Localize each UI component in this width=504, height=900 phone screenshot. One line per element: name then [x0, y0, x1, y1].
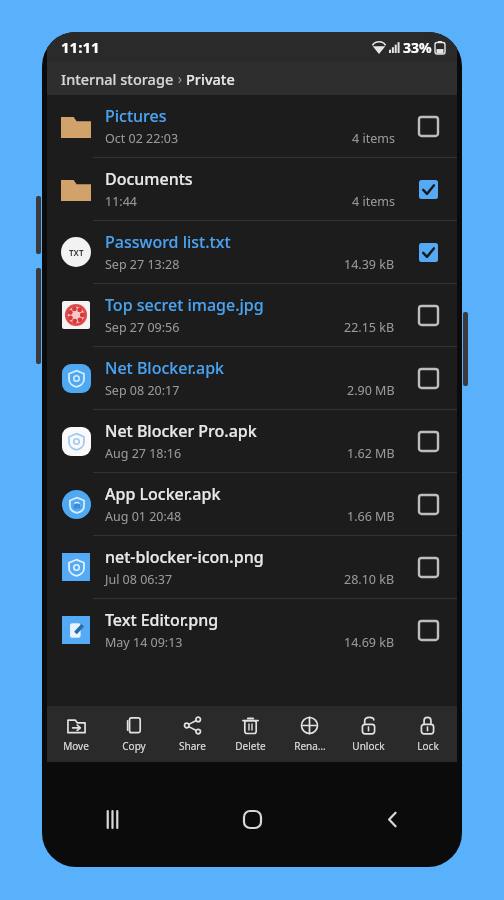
button[interactable]: Selected [411, 172, 445, 206]
staticText: TXT [69, 247, 84, 258]
button[interactable]: Top secret image.jpg [47, 284, 457, 346]
staticText: Net Blocker Pro.apk [105, 420, 257, 442]
button[interactable]: Back [322, 791, 462, 847]
button[interactable]: net-blocker-icon.png [47, 536, 457, 598]
button[interactable]: Net Blocker.apk [47, 347, 457, 409]
button[interactable]: Not selected [411, 424, 445, 458]
button[interactable]: Home [182, 791, 322, 847]
button[interactable]: Copy [105, 706, 163, 762]
staticText: › [174, 69, 186, 88]
staticText: Move [63, 739, 89, 753]
staticText: May 14 09:13 [105, 634, 183, 651]
staticText: Copy [122, 739, 146, 753]
button[interactable]: Text Editor.png [47, 599, 457, 661]
button[interactable]: Not selected [411, 550, 445, 584]
staticText: Top secret image.jpg [105, 294, 264, 316]
button[interactable]: Selected [411, 235, 445, 269]
staticText: App Locker.apk [105, 483, 221, 505]
staticText: 4 items [352, 193, 395, 210]
staticText: Aug 27 18:16 [105, 445, 182, 462]
staticText: Delete [235, 739, 266, 753]
staticText: Jul 08 06:37 [105, 571, 173, 588]
button[interactable]: Documents [47, 158, 457, 220]
button[interactable]: Rena… [280, 706, 339, 762]
button[interactable]: Not selected [411, 109, 445, 143]
button[interactable]: Delete [221, 706, 280, 762]
staticText: 1.62 MB [347, 445, 395, 462]
button[interactable]: Not selected [411, 361, 445, 395]
staticText: Aug 01 20:48 [105, 508, 182, 525]
staticText: 11:11 [61, 37, 100, 57]
button[interactable]: Share [163, 706, 221, 762]
button[interactable]: Pictures [47, 95, 457, 157]
button[interactable]: TXT [47, 221, 457, 283]
staticText: Oct 02 22:03 [105, 130, 179, 147]
staticText: Documents [105, 168, 193, 190]
staticText: Internal storage [61, 69, 174, 89]
staticText: Pictures [105, 105, 167, 127]
button[interactable]: Lock [398, 706, 457, 762]
button[interactable]: App Locker.apk [47, 473, 457, 535]
button[interactable]: Recents [42, 791, 182, 847]
staticText: Private [186, 69, 235, 89]
staticText: Net Blocker.apk [105, 357, 225, 379]
button[interactable]: Unlock [339, 706, 398, 762]
staticText: Sep 27 09:56 [105, 319, 180, 336]
staticText: Password list.txt [105, 231, 231, 253]
staticText: 22.15 kB [344, 319, 395, 336]
staticText: Lock [417, 739, 439, 753]
staticText: 14.69 kB [344, 634, 395, 651]
staticText: 14.39 kB [344, 256, 395, 273]
button[interactable]: Net Blocker Pro.apk [47, 410, 457, 472]
staticText: 11:44 [105, 193, 137, 210]
button[interactable]: Move [47, 706, 105, 762]
staticText: Unlock [352, 739, 385, 753]
staticText: Text Editor.png [105, 609, 219, 631]
staticText: Sep 27 13:28 [105, 256, 180, 273]
staticText: 33% [403, 38, 432, 57]
staticText: Sep 08 20:17 [105, 382, 180, 399]
staticText: 28.10 kB [344, 571, 395, 588]
staticText: 1.66 MB [347, 508, 395, 525]
staticText: 2.90 MB [347, 382, 395, 399]
button[interactable]: Not selected [411, 298, 445, 332]
button[interactable]: Not selected [411, 487, 445, 521]
button[interactable]: Internal storage [47, 62, 457, 95]
staticText: 4 items [352, 130, 395, 147]
button[interactable]: Not selected [411, 613, 445, 647]
staticText: Share [179, 739, 206, 753]
staticText: net-blocker-icon.png [105, 546, 264, 568]
staticText: Rena… [294, 739, 326, 753]
